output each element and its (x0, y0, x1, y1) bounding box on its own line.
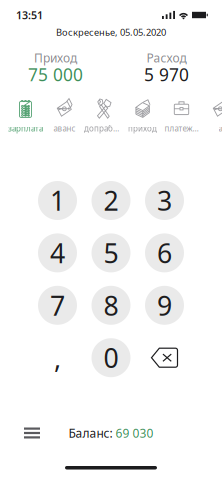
button[interactable]: 7 (38, 286, 77, 325)
staticText: 69 030 (115, 425, 153, 441)
staticText: платеж… (164, 123, 198, 134)
button[interactable]: 2 (91, 181, 130, 220)
button[interactable]: 5 (91, 233, 130, 272)
button[interactable]: а (201, 99, 222, 133)
button[interactable]: зарплата (6, 99, 45, 133)
staticText: 75 000 (28, 63, 83, 86)
button[interactable]: допрабо… (84, 99, 123, 133)
button[interactable]: Menu (10, 421, 54, 445)
staticText: приход (128, 123, 157, 134)
staticText: 3 (157, 183, 172, 218)
staticText: 2 (103, 183, 118, 218)
button[interactable]: приход (123, 99, 162, 133)
staticText: 9 (157, 288, 172, 323)
staticText: Воскресенье, 05.05.2020 (56, 26, 166, 38)
staticText: 5 970 (144, 63, 189, 86)
button[interactable]: 9 (145, 286, 184, 325)
staticText: допрабо… (84, 123, 123, 134)
button[interactable]: , (38, 338, 77, 377)
staticText: Расход (146, 50, 186, 66)
staticText: 4 (50, 235, 65, 271)
button[interactable]: 1 (38, 181, 77, 220)
button[interactable]: 3 (145, 181, 184, 220)
staticText: 7 (50, 288, 65, 323)
staticText: 13:51 (16, 8, 43, 22)
staticText: а (218, 123, 222, 134)
staticText: 0 (103, 340, 118, 375)
staticText: Баланс: (68, 425, 112, 441)
button[interactable]: аванс (45, 99, 84, 133)
button[interactable]: Delete (145, 338, 184, 377)
staticText: 8 (103, 288, 118, 323)
button[interactable]: Баланс: (68, 421, 153, 445)
button[interactable]: 8 (91, 286, 130, 325)
staticText: зарплата (8, 123, 43, 134)
staticText: аванс (53, 123, 75, 134)
button[interactable]: 0 (91, 338, 130, 377)
button[interactable]: 6 (145, 233, 184, 272)
button[interactable]: 4 (38, 233, 77, 272)
staticText: , (54, 340, 61, 375)
button[interactable]: платеж… (162, 99, 201, 133)
staticText: Приход (34, 50, 77, 66)
staticText: 6 (157, 235, 172, 271)
staticText: 1 (50, 183, 65, 218)
staticText: 5 (103, 235, 118, 271)
